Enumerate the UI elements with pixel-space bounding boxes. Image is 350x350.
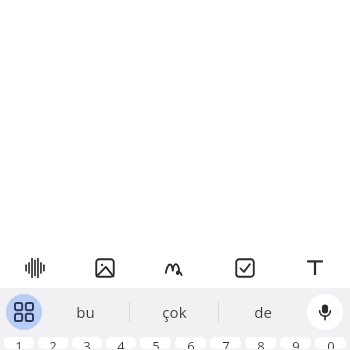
staticText: 8	[257, 337, 265, 349]
button[interactable]: de	[219, 288, 307, 336]
button[interactable]: 1	[4, 337, 34, 349]
staticText: 3	[83, 337, 91, 349]
staticText: 0	[327, 337, 335, 349]
staticText: bu	[76, 302, 95, 322]
staticText: 6	[187, 337, 195, 349]
button[interactable]: Insert image	[70, 248, 140, 288]
staticText: 5	[152, 337, 160, 349]
button[interactable]: 3	[72, 337, 102, 349]
button[interactable]: Voice input	[0, 248, 70, 288]
button[interactable]: 5	[140, 337, 171, 349]
button[interactable]: 8	[245, 337, 276, 349]
button[interactable]: 9	[280, 337, 311, 349]
button[interactable]: 7	[210, 337, 241, 349]
button[interactable]: Voice typing	[307, 294, 343, 330]
staticText: çok	[162, 302, 187, 322]
button[interactable]: bu	[42, 288, 129, 336]
button[interactable]: çok	[130, 288, 218, 336]
button[interactable]: 2	[38, 337, 68, 349]
button[interactable]: Clipboard	[210, 248, 280, 288]
button[interactable]: 6	[175, 337, 206, 349]
button[interactable]: Handwriting	[140, 248, 210, 288]
staticText: de	[254, 302, 272, 322]
staticText: 7	[222, 337, 230, 349]
staticText: 9	[292, 337, 300, 349]
staticText: 1	[15, 337, 23, 349]
button[interactable]: Text editing	[280, 248, 350, 288]
staticText: 4	[117, 337, 125, 349]
button[interactable]: 4	[106, 337, 136, 349]
button[interactable]: 0	[315, 337, 346, 349]
button[interactable]: Open toolbar	[6, 294, 42, 330]
staticText: 2	[49, 337, 57, 349]
